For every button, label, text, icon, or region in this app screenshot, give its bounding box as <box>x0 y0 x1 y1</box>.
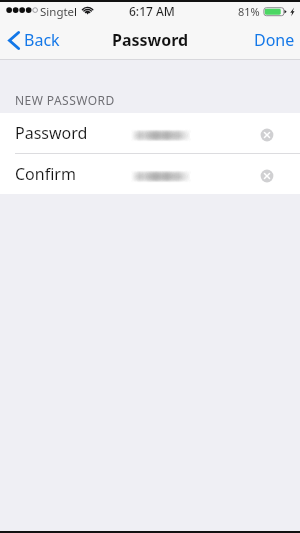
button[interactable]: Password <box>0 113 300 153</box>
staticText: 6:17 AM <box>129 3 175 19</box>
staticText: NEW PASSWORD <box>15 92 115 108</box>
staticText: Done <box>254 29 295 51</box>
button[interactable]: Back <box>4 27 66 55</box>
button[interactable]: Confirm <box>0 154 300 194</box>
staticText: Confirm <box>15 163 76 185</box>
staticText: 81% <box>238 4 260 19</box>
button[interactable]: Done <box>249 25 300 55</box>
staticText: Singtel <box>40 4 78 20</box>
staticText: Password <box>112 29 189 51</box>
staticText: Password <box>15 122 88 144</box>
staticText: Back <box>24 29 60 51</box>
button[interactable]: Clear text <box>260 169 274 183</box>
button[interactable]: Clear text <box>260 128 274 142</box>
